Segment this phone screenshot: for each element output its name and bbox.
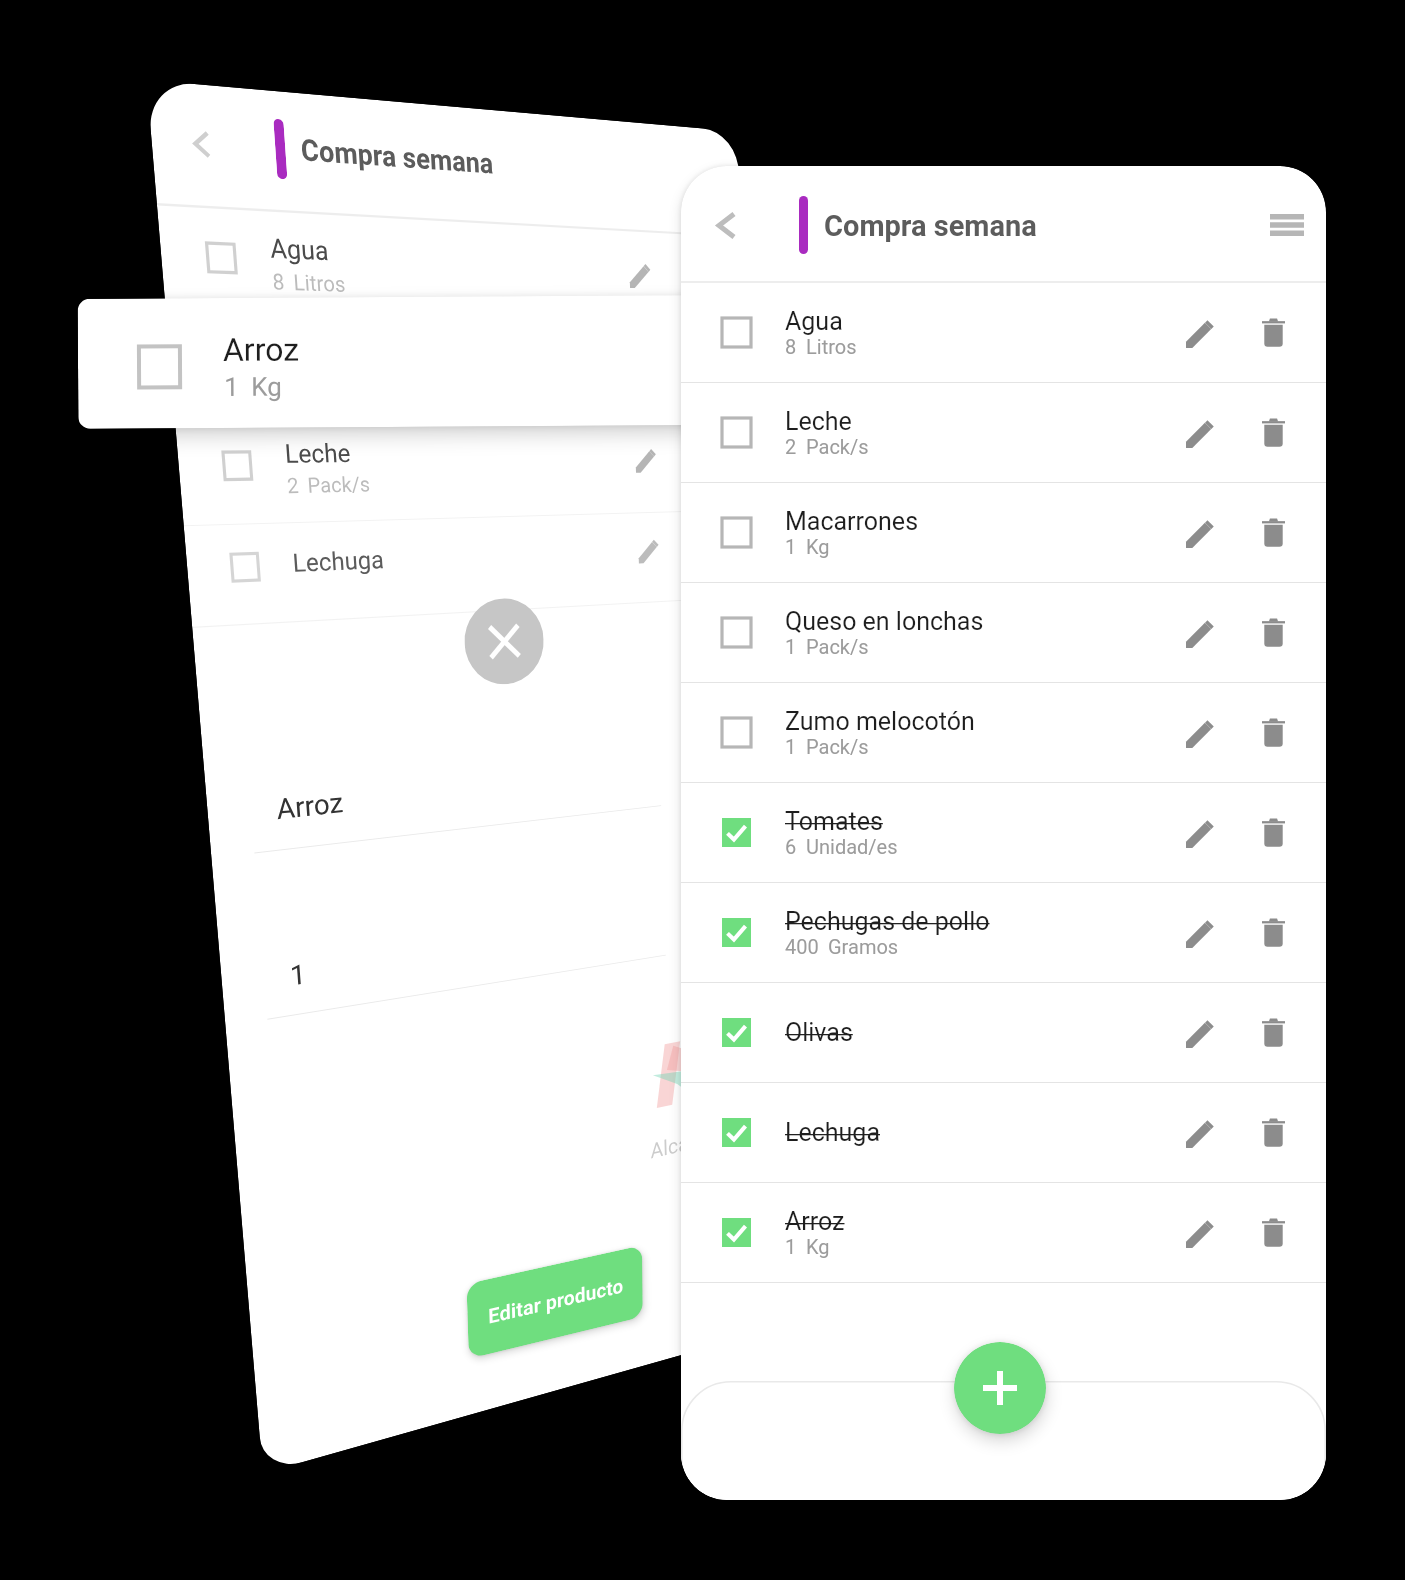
- staticText: Pechugas de pollo: [785, 907, 990, 936]
- button[interactable]: Editar producto: [465, 1241, 644, 1363]
- button[interactable]: Lechuga: [681, 1083, 1326, 1183]
- staticText: 2: [286, 473, 300, 498]
- button[interactable]: Edit: [1165, 897, 1237, 969]
- button[interactable]: Zumo melocotón: [681, 683, 1326, 783]
- button[interactable]: Tomates: [681, 783, 1326, 883]
- staticText: 400: [785, 935, 819, 958]
- staticText: 1: [785, 635, 797, 658]
- staticText: Arroz: [223, 330, 300, 369]
- staticText: Leche: [785, 407, 852, 436]
- staticText: Kg: [806, 1235, 830, 1258]
- staticText: Olivas: [785, 1018, 853, 1047]
- button[interactable]: Back: [175, 116, 226, 171]
- button[interactable]: Edit: [1165, 997, 1237, 1069]
- staticText: Unidad/es: [806, 835, 898, 858]
- staticText: Macarrones: [785, 507, 919, 536]
- button[interactable]: Delete: [1237, 697, 1309, 769]
- button[interactable]: Agua: [681, 283, 1326, 383]
- button[interactable]: Delete: [1237, 797, 1309, 869]
- button[interactable]: [681, 1381, 1326, 1500]
- staticText: Agua: [785, 307, 843, 336]
- button[interactable]: Pechugas de pollo: [681, 883, 1326, 983]
- staticText: Editar producto: [487, 1271, 624, 1332]
- staticText: Compra semana: [300, 133, 494, 180]
- staticText: Litros: [806, 335, 857, 358]
- button[interactable]: Edit: [626, 524, 671, 576]
- button[interactable]: Menu: [1251, 203, 1323, 247]
- staticText: Alcachofas: [650, 1119, 747, 1164]
- staticText: 1: [785, 535, 797, 558]
- button[interactable]: Delete: [1237, 597, 1309, 669]
- staticText: Tomates: [785, 807, 883, 836]
- button[interactable]: Edit: [1165, 497, 1237, 569]
- button[interactable]: Delete: [1237, 397, 1309, 469]
- button[interactable]: Delete: [1237, 897, 1309, 969]
- staticText: Zumo melocotón: [785, 707, 975, 736]
- button[interactable]: Back: [708, 207, 744, 243]
- button[interactable]: Delete: [1237, 997, 1309, 1069]
- button[interactable]: Delete: [1237, 297, 1309, 369]
- staticText: Litros: [293, 269, 346, 296]
- staticText: Queso en lonchas: [785, 607, 984, 636]
- staticText: 6: [785, 835, 797, 858]
- staticText: Compra semana: [824, 209, 1037, 243]
- staticText: Gramos: [828, 935, 899, 958]
- staticText: Arroz: [275, 786, 345, 826]
- staticText: 2: [785, 435, 797, 458]
- button[interactable]: Arroz: [681, 1183, 1326, 1283]
- button[interactable]: Edit: [617, 247, 664, 302]
- button[interactable]: Delete: [1237, 497, 1309, 569]
- button[interactable]: Edit: [623, 434, 669, 485]
- button[interactable]: Olivas: [681, 983, 1326, 1083]
- staticText: Lechuga: [785, 1118, 880, 1147]
- button[interactable]: Edit: [1165, 597, 1237, 669]
- button[interactable]: Leche: [681, 383, 1326, 483]
- button[interactable]: Edit: [1165, 1197, 1237, 1269]
- button[interactable]: Edit: [1165, 697, 1237, 769]
- button[interactable]: Macarrones: [681, 483, 1326, 583]
- button[interactable]: Edit: [1165, 397, 1237, 469]
- button[interactable]: Delete: [1237, 1097, 1309, 1169]
- staticText: 8: [272, 268, 286, 294]
- button[interactable]: Queso en lonchas: [681, 583, 1326, 683]
- staticText: 8: [785, 335, 797, 358]
- staticText: 1: [785, 1235, 797, 1258]
- button[interactable]: Edit: [1165, 797, 1237, 869]
- staticText: Pack/s: [307, 472, 371, 497]
- staticText: Pack/s: [806, 735, 869, 758]
- staticText: Pack/s: [806, 635, 869, 658]
- staticText: Kg: [251, 372, 282, 402]
- staticText: 1: [289, 958, 308, 993]
- staticText: Agua: [269, 233, 330, 267]
- button[interactable]: Edit: [1165, 1097, 1237, 1169]
- button[interactable]: Delete: [1237, 1197, 1309, 1269]
- staticText: Lechuga: [292, 545, 385, 578]
- button[interactable]: Close: [462, 596, 545, 687]
- staticText: Pack/s: [806, 435, 869, 458]
- staticText: 1: [224, 372, 239, 402]
- button[interactable]: Arroz: [78, 295, 696, 429]
- staticText: Leche: [284, 439, 352, 470]
- button[interactable]: Add product: [954, 1342, 1046, 1434]
- staticText: 1: [785, 735, 797, 758]
- button[interactable]: Edit: [1165, 297, 1237, 369]
- staticText: Kg: [806, 535, 830, 558]
- staticText: Arroz: [785, 1207, 845, 1236]
